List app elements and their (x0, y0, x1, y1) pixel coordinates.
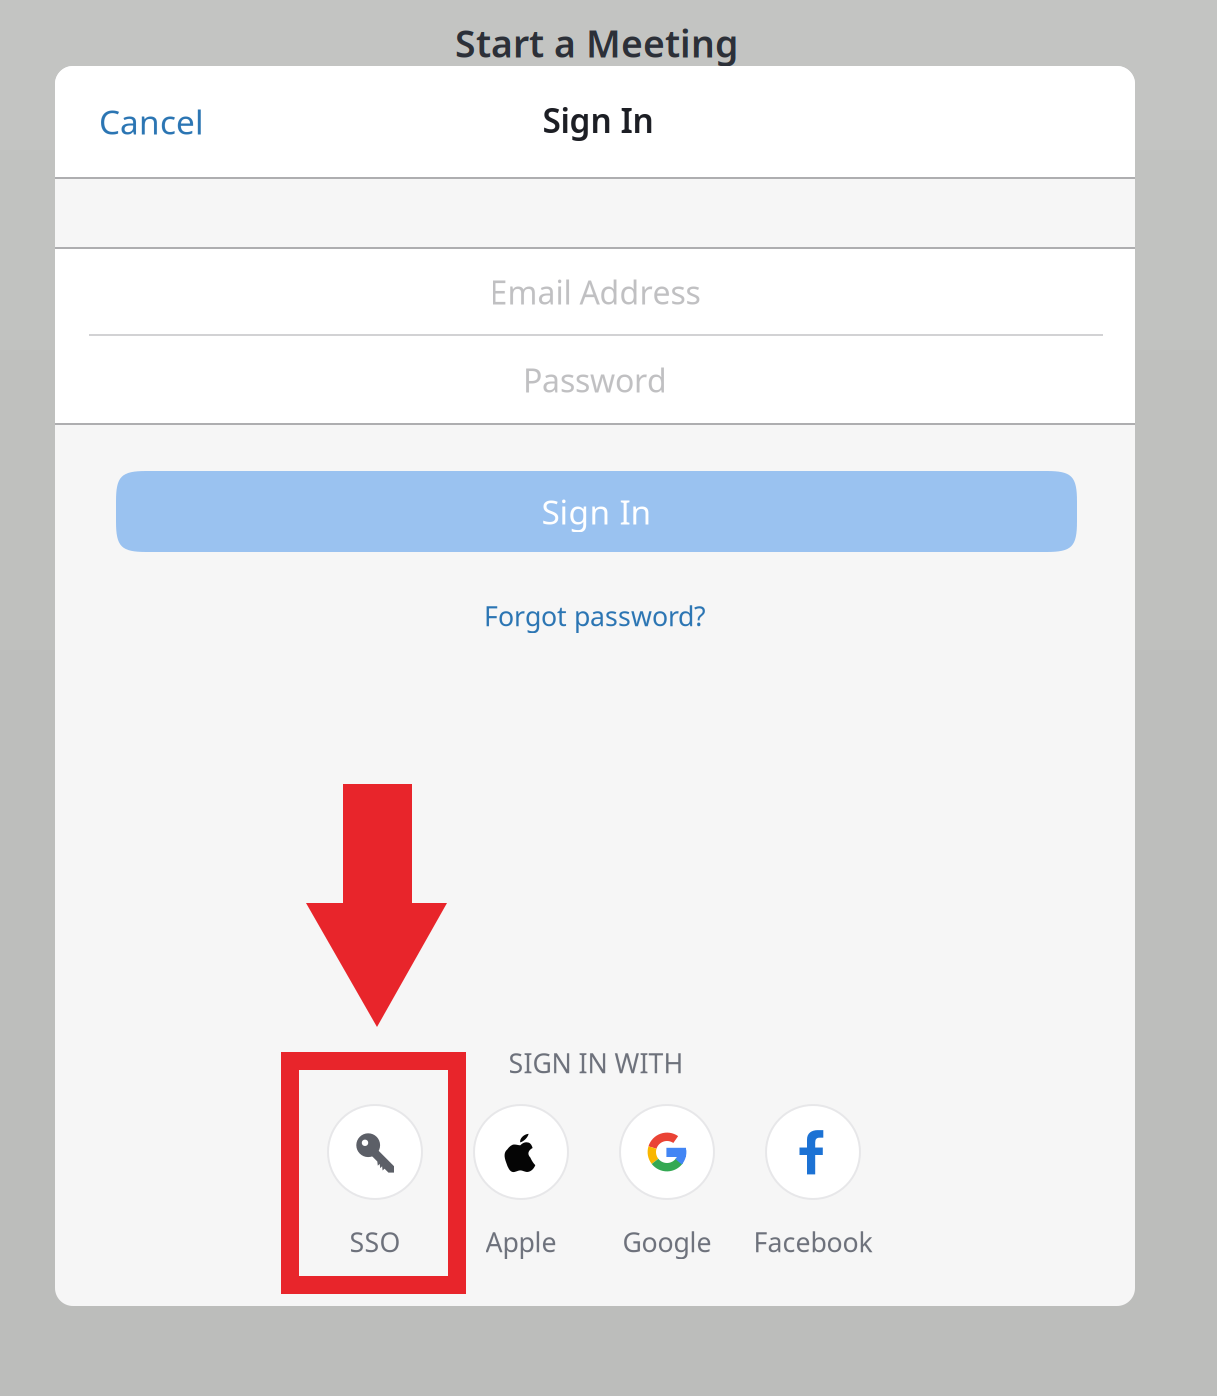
staticText: Google (622, 1224, 711, 1260)
staticText: Start a Meeting (455, 18, 738, 68)
button[interactable]: Sign in with Google (594, 1103, 740, 1263)
staticText: Forgot password? (484, 598, 706, 634)
staticText: Sign In (541, 489, 651, 534)
staticText: Apple (485, 1224, 556, 1260)
button[interactable]: Sign in with Apple (448, 1103, 594, 1263)
button[interactable]: Sign in with SSO (302, 1103, 448, 1263)
button[interactable]: Sign in with Facebook (740, 1103, 886, 1263)
button[interactable]: Cancel (55, 66, 255, 177)
button[interactable]: Forgot password? (345, 592, 845, 640)
staticText: Cancel (99, 99, 204, 144)
staticText: SSO (349, 1224, 400, 1260)
staticText: Email Address (489, 271, 700, 313)
staticText: Sign In (542, 98, 653, 142)
staticText: SIGN IN WITH (508, 1045, 683, 1081)
staticText: Password (523, 359, 667, 401)
button[interactable]: Sign In (116, 471, 1077, 552)
staticText: Facebook (753, 1224, 872, 1260)
